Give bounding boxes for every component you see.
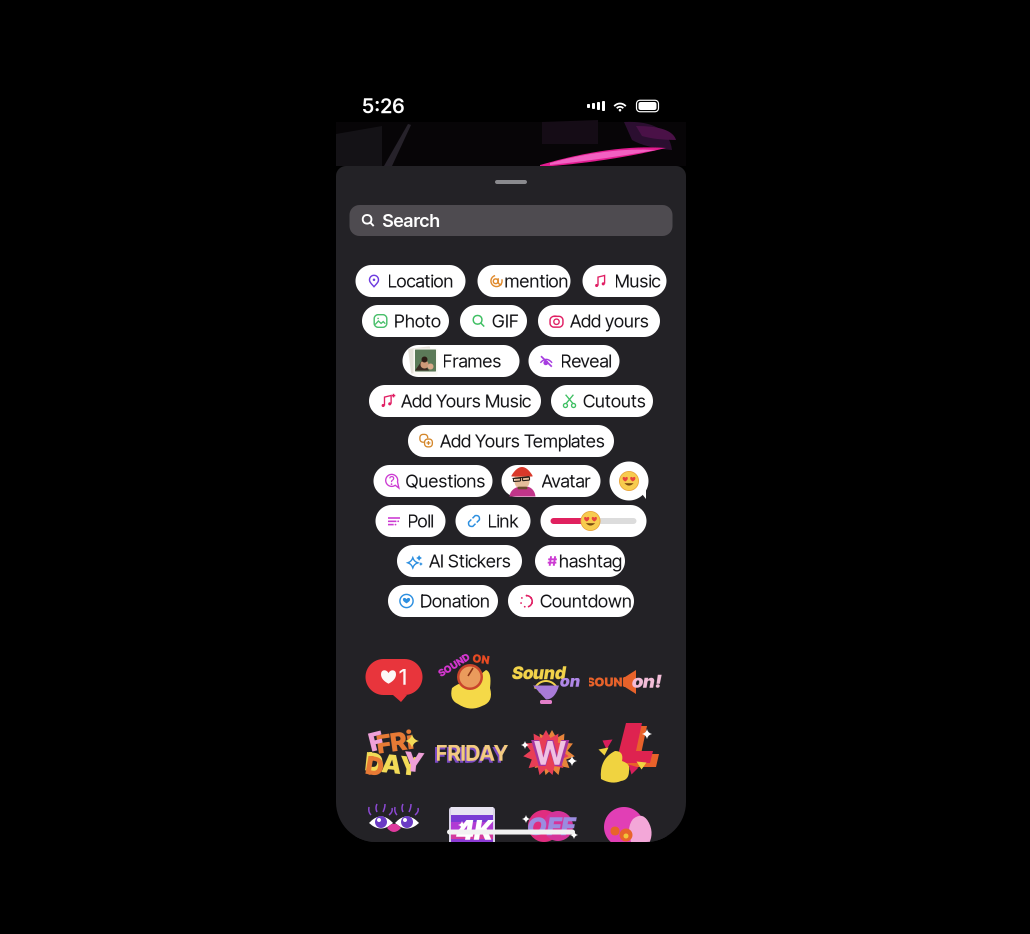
button[interactable]: Off sticker — [511, 791, 589, 859]
staticText: SOUND — [436, 659, 471, 671]
button[interactable]: W sticker — [511, 719, 589, 787]
staticText: Avatar — [541, 470, 590, 492]
staticText: Questions — [405, 470, 485, 492]
button[interactable]: hashtag — [535, 545, 625, 577]
staticText: FRIDAY — [435, 740, 508, 766]
button[interactable]: mention — [477, 265, 570, 297]
button[interactable]: Sound on sticker — [433, 647, 511, 715]
staticText: Sound — [512, 662, 566, 683]
staticText: 5:26 — [362, 94, 405, 118]
staticText: FRIDAY — [434, 742, 507, 768]
staticText: Music — [614, 270, 660, 292]
staticText: D — [366, 751, 384, 781]
staticText: Poll — [407, 510, 433, 532]
staticText: on! — [632, 670, 662, 692]
button[interactable]: Emoji sticker — [609, 461, 648, 500]
button[interactable]: Add Yours Music — [369, 385, 541, 417]
staticText: Add Yours Music — [401, 390, 531, 412]
button[interactable]: ? — [373, 465, 492, 497]
staticText: ON — [472, 652, 489, 666]
staticText: OFF — [527, 811, 575, 841]
button[interactable]: Location — [355, 265, 465, 297]
staticText: on — [560, 671, 580, 691]
staticText: hashtag — [559, 550, 622, 572]
button[interactable]: Friday bubble sticker — [355, 719, 433, 787]
button[interactable]: Search — [349, 205, 672, 236]
button[interactable]: AI Stickers — [397, 545, 522, 577]
staticText: ? — [389, 474, 395, 488]
staticText: Frames — [442, 350, 501, 372]
staticText: Photo — [394, 310, 441, 332]
button[interactable]: L sticker — [589, 719, 667, 787]
staticText: Location — [387, 270, 453, 292]
staticText: Countdown — [540, 590, 632, 612]
staticText: DAY — [365, 749, 419, 779]
button[interactable]: Eyes sticker — [355, 791, 433, 859]
staticText: W — [531, 731, 569, 775]
button[interactable]: Pink figure sticker — [589, 791, 667, 859]
button[interactable]: Add yours — [538, 305, 660, 337]
staticText: GIF — [492, 310, 519, 332]
staticText: Donation — [420, 590, 490, 612]
staticText: FRi — [376, 727, 413, 757]
button[interactable]: Emoji slider — [540, 505, 646, 537]
staticText: 1 — [399, 664, 407, 690]
button[interactable]: Friday sticker — [433, 719, 511, 787]
button[interactable]: Sound on bowl sticker — [511, 647, 589, 715]
staticText: Add Yours Templates — [440, 430, 605, 452]
staticText: SOUND — [586, 674, 631, 690]
button[interactable]: Link — [455, 505, 530, 537]
staticText: Y — [404, 746, 424, 778]
staticText: 4K — [456, 814, 492, 846]
staticText: mention — [504, 270, 568, 292]
button[interactable]: GIF — [460, 305, 527, 337]
staticText: Link — [487, 510, 518, 532]
staticText: Add yours — [570, 310, 649, 332]
staticText: F — [369, 726, 383, 756]
staticText: Reveal — [560, 350, 611, 372]
button[interactable]: Sound on megaphone sticker — [589, 647, 667, 715]
staticText: Cutouts — [583, 390, 646, 412]
button[interactable]: Music — [582, 265, 666, 297]
button[interactable]: 4K sticker — [433, 791, 511, 859]
button[interactable]: Like sticker — [355, 647, 433, 715]
button[interactable]: Photo — [362, 305, 449, 337]
button[interactable]: Countdown — [508, 585, 634, 617]
button[interactable]: Reveal — [528, 345, 619, 377]
button[interactable]: Frames — [402, 345, 519, 377]
button[interactable]: Cutouts — [551, 385, 653, 417]
button[interactable]: Donation — [388, 585, 498, 617]
staticText: Search — [382, 210, 439, 231]
button[interactable]: Avatar — [501, 465, 600, 497]
button[interactable]: Add Yours Templates — [408, 425, 614, 457]
staticText: AI Stickers — [429, 550, 511, 572]
staticText: W — [534, 734, 566, 772]
button[interactable]: Poll — [375, 505, 445, 537]
